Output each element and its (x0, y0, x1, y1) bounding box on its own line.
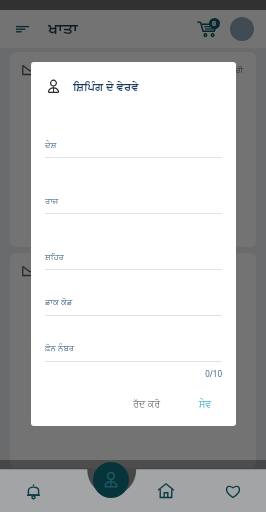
button[interactable]: ਡਾਕ ਕੋਡ (45, 296, 222, 316)
button[interactable]: ਸੇਵ (189, 393, 222, 414)
button[interactable]: Menu (12, 19, 32, 39)
button[interactable]: Profile (230, 17, 254, 41)
button[interactable]: ਰਾਜ (45, 197, 222, 214)
staticText: ਜਾਣਕਾਰੀ (212, 66, 244, 75)
button[interactable]: ਦੇਸ਼ (45, 141, 222, 158)
staticText: ਫ਼ੋਨ ਨੰਬਰ (45, 342, 74, 354)
staticText: ਰੱਦ ਕਰੋ (133, 397, 161, 410)
staticText: ਸੇਵ (199, 399, 212, 408)
staticText: ਡਾਕ ਕੋਡ (45, 296, 73, 308)
button[interactable]: Notifications (0, 470, 66, 512)
staticText: ਦੇਸ਼ (45, 141, 57, 150)
button[interactable]: ਰੱਦ ਕਰੋ (123, 391, 171, 416)
staticText: ਸ਼ਹਿਰ (45, 253, 64, 262)
button[interactable]: Home (132, 470, 199, 512)
staticText: ਸ਼ਿਪਿੰਗ ਦੇ ਵੇਰਵੇ (73, 79, 139, 94)
staticText: ਖਾਤਾ (48, 22, 78, 37)
button[interactable]: Account (93, 462, 129, 498)
staticText: ਵੇਰਵਾ (52, 265, 80, 277)
staticText: ਰਾਜ (45, 197, 59, 206)
staticText: 0 (212, 19, 217, 29)
staticText: 0/10 (45, 368, 222, 379)
button[interactable]: ਸ਼ਹਿਰ (45, 253, 222, 270)
button[interactable]: Cart (194, 16, 220, 42)
button[interactable]: ਫ਼ੋਨ ਨੰਬਰ (45, 342, 222, 362)
button[interactable]: Favorites (199, 470, 266, 512)
